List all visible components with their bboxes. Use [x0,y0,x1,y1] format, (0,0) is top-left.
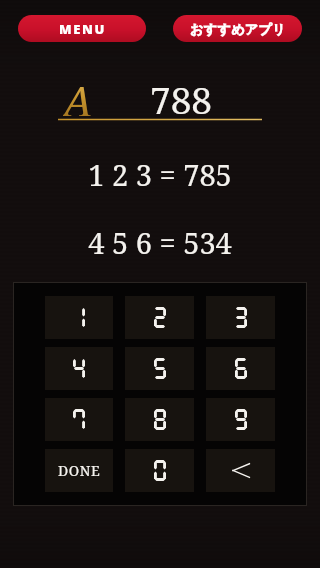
button[interactable] [206,347,275,390]
button[interactable] [45,347,113,390]
button[interactable] [125,449,194,492]
staticText: 1 2 3 = 785 [0,155,320,194]
staticText: 788 [150,74,213,118]
staticText: DONE [58,461,101,480]
staticText: A [63,72,93,116]
button[interactable] [125,347,194,390]
staticText: 4 5 6 = 534 [0,223,320,262]
button[interactable] [45,296,113,339]
button[interactable] [45,398,113,441]
button[interactable]: DONE [45,449,113,492]
button[interactable]: MENU [18,15,146,42]
button[interactable] [206,398,275,441]
button[interactable]: Backspace [206,449,275,492]
button[interactable] [206,296,275,339]
button[interactable] [125,398,194,441]
button[interactable] [125,296,194,339]
staticText: おすすめアプリ [190,21,286,37]
button[interactable]: おすすめアプリ [173,15,302,42]
staticText: MENU [59,20,106,38]
